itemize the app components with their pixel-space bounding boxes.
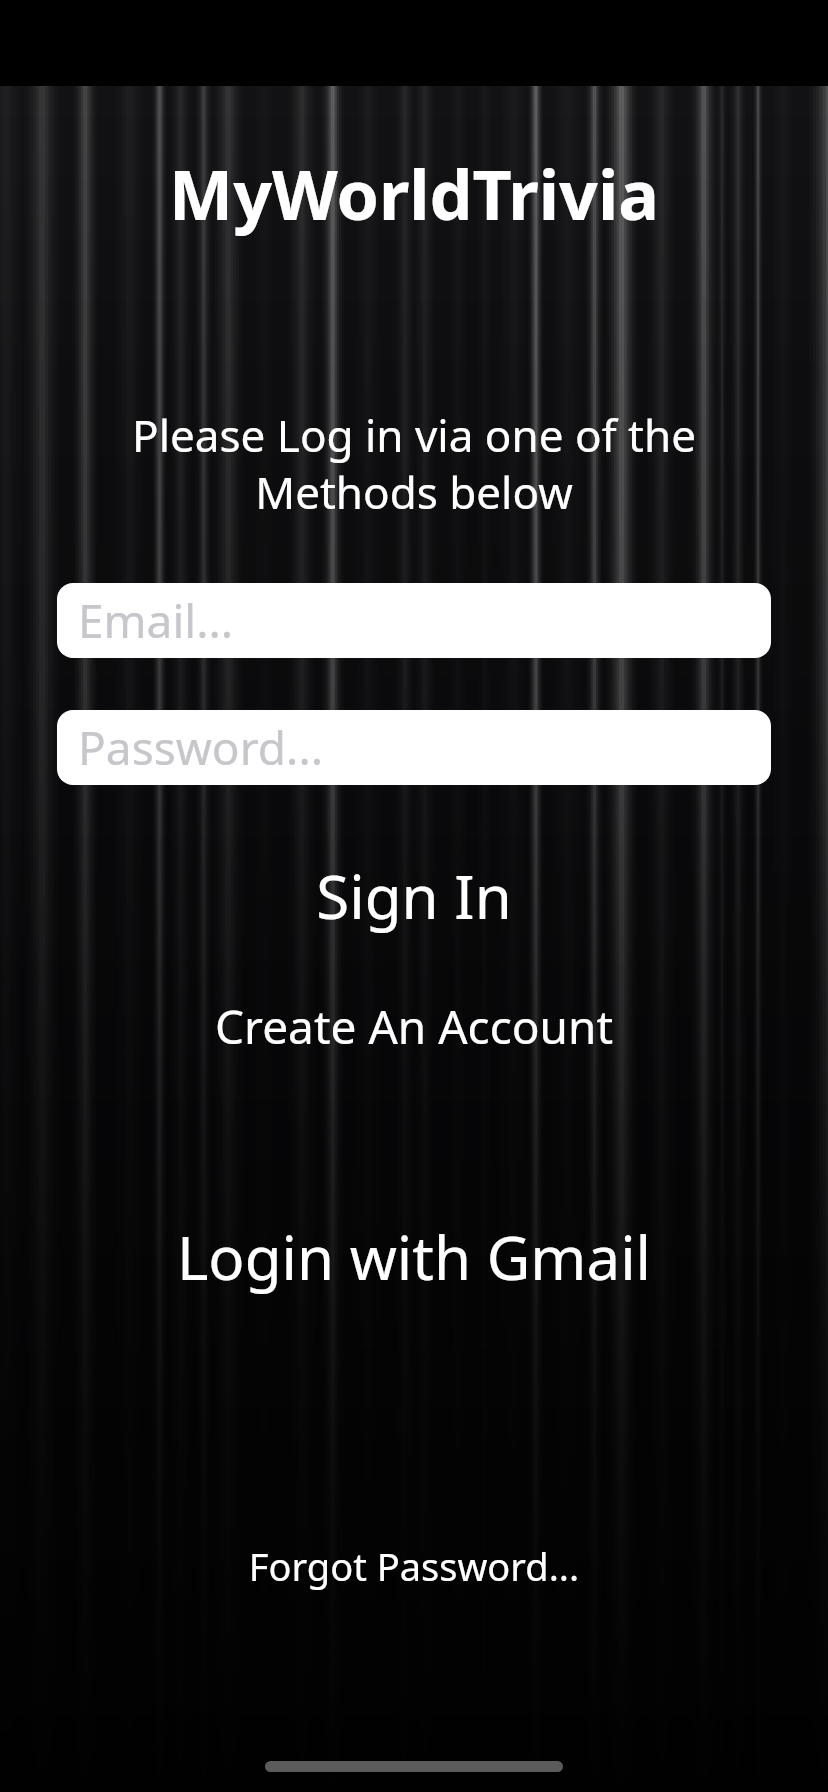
staticText: Please Log in via one of the Methods bel… (0, 405, 828, 522)
button[interactable]: Email... (57, 583, 771, 658)
staticText: MyWorldTrivia (0, 147, 828, 240)
staticText: Forgot Password... (0, 1540, 828, 1592)
button[interactable]: Login with Gmail (0, 1216, 828, 1298)
button[interactable]: Sign In (0, 855, 828, 937)
button[interactable]: Password... (57, 710, 771, 785)
other: Home indicator (265, 1761, 563, 1772)
staticText: Password... (78, 716, 324, 779)
button[interactable]: Create An Account (0, 995, 828, 1058)
staticText: Sign In (0, 855, 828, 937)
staticText: Login with Gmail (0, 1216, 828, 1298)
staticText: Email... (78, 589, 234, 652)
button[interactable]: Forgot Password... (0, 1540, 828, 1592)
staticText: Create An Account (0, 995, 828, 1058)
